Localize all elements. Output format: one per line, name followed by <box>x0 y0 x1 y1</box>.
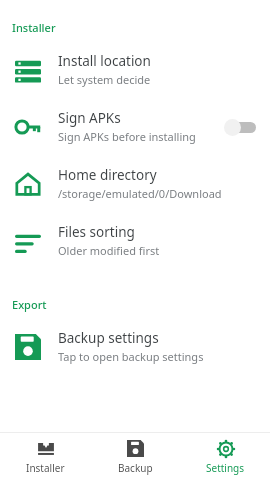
staticText: Older modified first <box>58 243 160 258</box>
staticText: /storage/emulated/0/Download <box>58 186 222 201</box>
button[interactable]: Sign APKs toggle <box>224 117 258 137</box>
staticText: Files sorting <box>58 223 135 241</box>
button[interactable]: Installer <box>0 435 90 479</box>
staticText: Tap to open backup settings <box>58 349 204 364</box>
button[interactable]: Home directory <box>0 155 270 212</box>
staticText: Install location <box>58 52 151 70</box>
staticText: Sign APKs before installing <box>58 129 196 144</box>
staticText: Backup settings <box>58 329 159 347</box>
button[interactable]: Sign APKs <box>0 98 270 155</box>
button[interactable]: Files sorting <box>0 212 270 269</box>
staticText: Backup <box>118 461 153 475</box>
button[interactable]: Backup settings <box>0 318 270 375</box>
button[interactable]: Settings <box>180 435 270 479</box>
button[interactable]: Backup <box>90 435 180 479</box>
staticText: Home directory <box>58 166 157 184</box>
staticText: Export <box>12 297 47 312</box>
button[interactable]: Install location <box>0 41 270 98</box>
staticText: Settings <box>206 461 245 475</box>
staticText: Sign APKs <box>58 109 121 127</box>
staticText: Installer <box>12 20 56 35</box>
staticText: Installer <box>26 461 65 475</box>
staticText: Let system decide <box>58 72 151 87</box>
